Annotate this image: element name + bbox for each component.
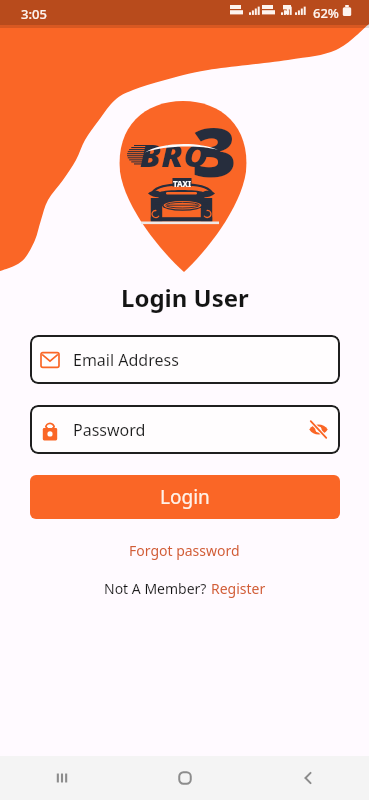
staticText: Forgot password — [129, 541, 240, 560]
staticText: 3:05 — [21, 5, 47, 23]
button[interactable]: Login — [30, 475, 340, 519]
button[interactable]: Back — [246, 756, 369, 800]
staticText: BRO — [140, 135, 209, 176]
staticText: Register — [211, 579, 266, 598]
button[interactable]: Home — [123, 756, 246, 800]
staticText: Password — [73, 419, 146, 441]
staticText: Not A Member? — [104, 579, 211, 598]
button[interactable]: Recent apps — [0, 756, 123, 800]
staticText: Login User — [121, 281, 249, 314]
staticText: Email Address — [73, 349, 179, 371]
staticText: 62% — [313, 4, 339, 22]
button[interactable]: Show password — [308, 419, 329, 440]
staticText: 3 — [192, 105, 238, 196]
button[interactable]: Password — [30, 405, 340, 454]
staticText: TAXI — [173, 178, 192, 187]
button[interactable]: Register — [211, 579, 266, 598]
button[interactable]: Email Address — [30, 335, 340, 384]
staticText: Login — [160, 484, 210, 510]
button[interactable]: Forgot password — [123, 538, 246, 563]
